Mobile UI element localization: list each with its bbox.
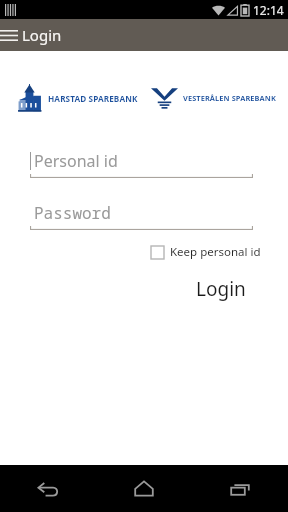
button[interactable]: Recent apps bbox=[192, 465, 288, 512]
staticText: Login bbox=[196, 276, 246, 302]
staticText: HARSTAD SPAREBANK bbox=[48, 93, 138, 104]
button[interactable]: Home bbox=[96, 465, 192, 512]
button[interactable]: Keep personal id bbox=[149, 241, 263, 263]
staticText: VESTERÅLEN SPAREBANK bbox=[183, 93, 276, 103]
button[interactable]: Password bbox=[30, 196, 253, 230]
button[interactable]: Personal id bbox=[30, 144, 253, 178]
staticText: Password bbox=[34, 202, 111, 224]
staticText: Keep personal id bbox=[170, 244, 261, 260]
staticText: 12:14 bbox=[253, 2, 284, 18]
button[interactable]: Back bbox=[0, 465, 96, 512]
button[interactable]: Open navigation menu bbox=[0, 19, 22, 51]
staticText: Personal id bbox=[34, 150, 118, 172]
staticText: Login bbox=[22, 25, 62, 45]
button[interactable]: Login bbox=[190, 272, 252, 306]
